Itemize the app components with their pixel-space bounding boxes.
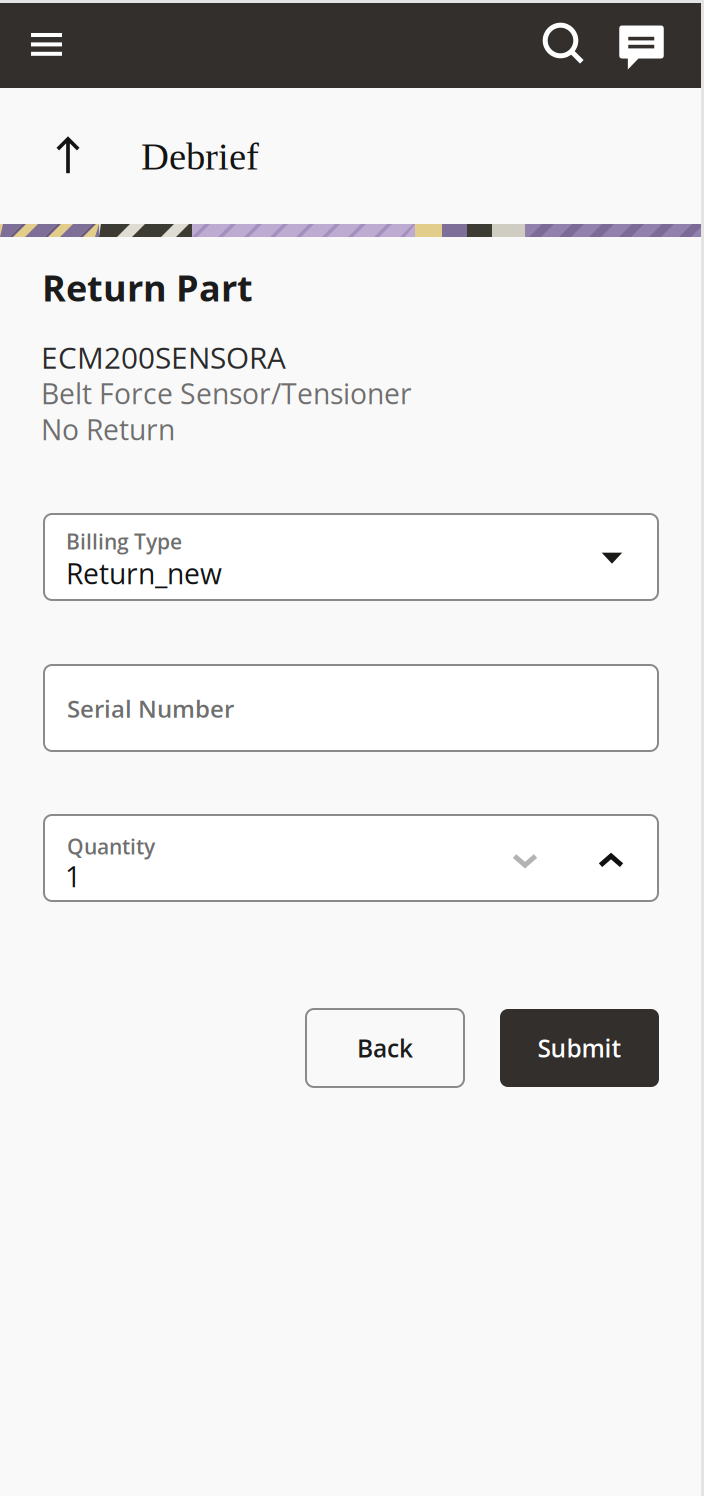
staticText: ECM200SENSORA [41, 337, 286, 377]
staticText: Belt Force Sensor/Tensioner [41, 374, 412, 412]
staticText: 1 [65, 857, 81, 895]
staticText: Serial Number [67, 692, 234, 725]
button[interactable]: Menu [15, 13, 78, 76]
staticText: Billing Type [66, 527, 182, 556]
staticText: Submit [537, 1031, 621, 1065]
staticText: No Return [41, 410, 175, 448]
button[interactable]: Back [40, 128, 96, 184]
button[interactable]: Submit [500, 1009, 659, 1087]
button[interactable]: Search [532, 12, 595, 75]
button[interactable]: Serial Number [44, 665, 658, 751]
button[interactable]: Billing Type [44, 514, 658, 600]
staticText: Debrief [141, 135, 259, 178]
staticText: Return_new [66, 554, 222, 592]
button[interactable]: Quantity [44, 815, 658, 901]
staticText: Return Part [42, 263, 253, 312]
staticText: Back [357, 1031, 413, 1065]
button[interactable]: Messages [610, 16, 673, 79]
staticText: Quantity [67, 832, 155, 861]
button[interactable]: Back [306, 1009, 464, 1087]
